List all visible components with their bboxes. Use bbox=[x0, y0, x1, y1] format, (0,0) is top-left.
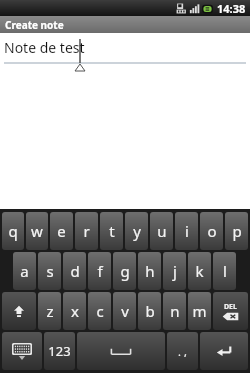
button[interactable]: z bbox=[38, 292, 61, 330]
staticText: a bbox=[20, 261, 29, 281]
button[interactable]: o bbox=[200, 212, 223, 250]
staticText: w bbox=[31, 221, 43, 241]
button[interactable]: k bbox=[188, 252, 211, 290]
staticText: d bbox=[70, 261, 80, 281]
staticText: h bbox=[145, 261, 155, 281]
button[interactable]: l bbox=[213, 252, 236, 290]
button[interactable]: m bbox=[188, 292, 211, 330]
button[interactable]: c bbox=[88, 292, 111, 330]
button[interactable]: j bbox=[163, 252, 186, 290]
staticText: x bbox=[71, 301, 79, 321]
staticText: p bbox=[232, 221, 242, 241]
button[interactable]: y bbox=[125, 212, 148, 250]
button[interactable]: d bbox=[63, 252, 86, 290]
button[interactable]: 123 bbox=[44, 332, 75, 370]
button[interactable]: q bbox=[2, 212, 24, 250]
button[interactable]: b bbox=[138, 292, 161, 330]
staticText: . , bbox=[178, 344, 187, 359]
staticText: 14:38 bbox=[217, 1, 246, 16]
staticText: n bbox=[170, 301, 180, 321]
staticText: t bbox=[109, 221, 115, 241]
button[interactable]: e bbox=[50, 212, 73, 250]
button[interactable]: . , bbox=[167, 332, 198, 370]
staticText: z bbox=[46, 301, 54, 321]
button[interactable]: p bbox=[225, 212, 248, 250]
button[interactable]: h bbox=[138, 252, 161, 290]
button[interactable]: Delete bbox=[213, 292, 248, 330]
button[interactable]: u bbox=[150, 212, 173, 250]
button[interactable]: i bbox=[175, 212, 198, 250]
staticText: c bbox=[96, 301, 104, 321]
staticText: f bbox=[97, 261, 103, 281]
staticText: k bbox=[195, 261, 204, 281]
button[interactable]: n bbox=[163, 292, 186, 330]
staticText: j bbox=[173, 261, 177, 281]
staticText: y bbox=[133, 221, 141, 241]
button[interactable]: Shift bbox=[2, 292, 36, 330]
staticText: Note de test bbox=[4, 38, 85, 57]
staticText: g bbox=[120, 261, 130, 281]
staticText: l bbox=[223, 261, 227, 281]
button[interactable]: g bbox=[113, 252, 136, 290]
button[interactable]: Enter bbox=[200, 332, 248, 370]
staticText: u bbox=[157, 221, 167, 241]
staticText: v bbox=[121, 301, 129, 321]
button[interactable]: Hide keyboard bbox=[2, 332, 42, 370]
button[interactable]: r bbox=[75, 212, 98, 250]
button[interactable]: s bbox=[38, 252, 61, 290]
staticText: Create note bbox=[5, 18, 64, 32]
button[interactable]: f bbox=[88, 252, 111, 290]
staticText: m bbox=[192, 301, 207, 321]
button[interactable]: Note de test bbox=[4, 38, 246, 68]
staticText: s bbox=[46, 261, 54, 281]
staticText: DEL bbox=[224, 302, 237, 312]
button[interactable]: Space bbox=[77, 332, 165, 370]
staticText: o bbox=[207, 221, 217, 241]
button[interactable]: v bbox=[113, 292, 136, 330]
staticText: i bbox=[185, 221, 189, 241]
staticText: b bbox=[145, 301, 155, 321]
button[interactable]: a bbox=[13, 252, 36, 290]
button[interactable]: x bbox=[63, 292, 86, 330]
staticText: r bbox=[83, 221, 90, 241]
staticText: 123 bbox=[48, 342, 71, 360]
button[interactable]: w bbox=[26, 212, 48, 250]
button[interactable]: t bbox=[100, 212, 123, 250]
staticText: e bbox=[57, 221, 66, 241]
staticText: q bbox=[8, 221, 18, 241]
